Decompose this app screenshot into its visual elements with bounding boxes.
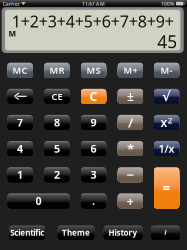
staticText: x [160, 114, 167, 130]
staticText: 6 [91, 141, 97, 156]
button[interactable] [118, 141, 143, 156]
button[interactable] [154, 115, 179, 130]
staticText: 11:47 AM [82, 0, 105, 7]
staticText: / [128, 113, 133, 131]
staticText: C [90, 88, 98, 104]
button[interactable] [44, 141, 69, 156]
staticText: MC [13, 64, 28, 76]
staticText: Scientific [10, 227, 44, 238]
button[interactable] [81, 193, 106, 208]
staticText: ± [127, 88, 134, 104]
staticText: Theme [62, 227, 90, 238]
staticText: M+ [123, 64, 137, 76]
button[interactable] [81, 63, 106, 78]
staticText: 2 [168, 115, 173, 126]
button[interactable] [118, 63, 143, 78]
staticText: CE [51, 90, 62, 102]
button[interactable] [44, 167, 69, 182]
button[interactable] [44, 63, 69, 78]
button[interactable]: Scientific [9, 225, 45, 240]
button[interactable] [81, 167, 106, 182]
staticText: MR [49, 64, 64, 76]
button[interactable] [7, 193, 69, 208]
button[interactable] [44, 115, 69, 130]
staticText: Carrier [2, 0, 19, 7]
staticText: 9 [91, 115, 97, 129]
staticText: 1 [17, 168, 23, 182]
button[interactable]: Settings [151, 225, 180, 240]
staticText: 4 [17, 141, 23, 156]
button[interactable] [7, 115, 33, 130]
button[interactable] [44, 89, 69, 104]
staticText: * [127, 140, 134, 157]
staticText: √ [162, 89, 171, 104]
button[interactable] [118, 193, 143, 208]
staticText: 7 [17, 115, 23, 129]
staticText: = [163, 179, 171, 197]
staticText: 45 [157, 30, 177, 53]
staticText: M [9, 28, 17, 39]
staticText: − [126, 166, 134, 183]
staticText: 1+2+3+4+5+6+7+8+9+ [12, 11, 174, 32]
staticText: . [92, 194, 95, 208]
button[interactable] [118, 167, 143, 182]
button[interactable] [118, 115, 143, 130]
button[interactable]: History [104, 225, 142, 240]
staticText: 2 [54, 168, 60, 182]
staticText: M- [161, 64, 173, 76]
button[interactable]: Theme [58, 225, 94, 240]
button[interactable] [7, 141, 33, 156]
staticText: 5 [54, 141, 60, 156]
button[interactable] [7, 167, 33, 182]
button[interactable] [154, 141, 179, 156]
button[interactable] [81, 89, 106, 104]
button[interactable] [81, 115, 106, 130]
staticText: History [108, 227, 137, 238]
staticText: 8 [54, 115, 60, 129]
staticText: + [126, 192, 134, 210]
button[interactable] [118, 89, 143, 104]
button[interactable] [154, 63, 179, 78]
button[interactable] [154, 167, 179, 208]
staticText: 0 [35, 194, 41, 208]
button[interactable]: Backspace [7, 89, 33, 104]
button[interactable] [7, 63, 33, 78]
staticText: 3 [91, 168, 97, 182]
staticText: 1/x [159, 141, 175, 156]
button[interactable] [81, 141, 106, 156]
staticText: MS [87, 64, 101, 76]
staticText: 100% [161, 0, 175, 7]
button[interactable] [154, 89, 179, 104]
